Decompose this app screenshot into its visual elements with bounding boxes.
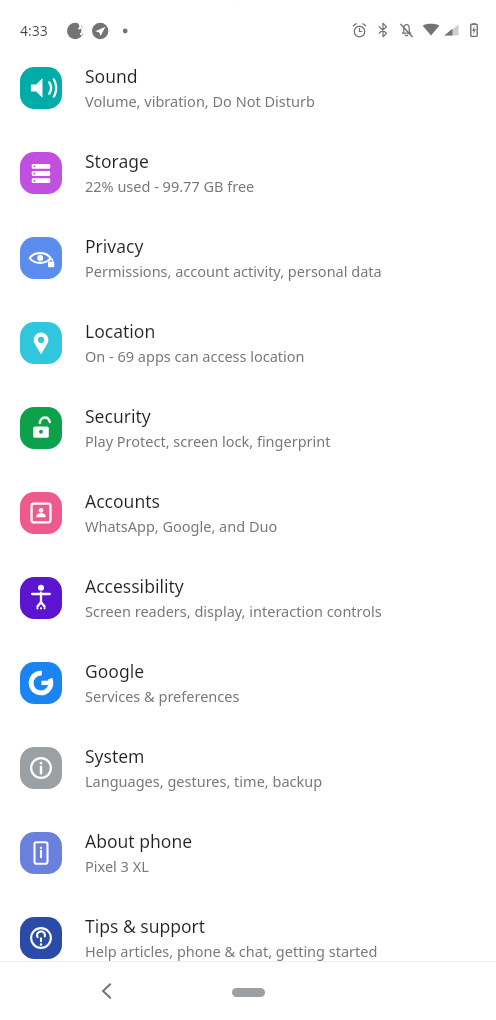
staticText: System: [85, 744, 145, 768]
staticText: Permissions, account activity, personal …: [85, 261, 382, 281]
staticText: Sound: [85, 64, 138, 88]
staticText: 4:33: [20, 21, 48, 40]
staticText: Languages, gestures, time, backup: [85, 771, 323, 791]
button[interactable]: Accessibility: [0, 555, 496, 640]
button[interactable]: System: [0, 725, 496, 810]
staticText: Help articles, phone & chat, getting sta…: [85, 941, 378, 961]
staticText: WhatsApp, Google, and Duo: [85, 516, 278, 536]
button[interactable]: Back: [85, 969, 129, 1013]
staticText: 22% used - 99.77 GB free: [85, 176, 255, 196]
button[interactable]: Home: [218, 979, 278, 1005]
staticText: Pixel 3 XL: [85, 856, 149, 876]
button[interactable]: Tips & support: [0, 895, 496, 980]
staticText: Security: [85, 404, 151, 428]
staticText: Privacy: [85, 234, 144, 258]
button[interactable]: Google: [0, 640, 496, 725]
button[interactable]: Location: [0, 300, 496, 385]
button[interactable]: Privacy: [0, 215, 496, 300]
staticText: Volume, vibration, Do Not Disturb: [85, 91, 315, 111]
staticText: On - 69 apps can access location: [85, 346, 305, 366]
staticText: Accounts: [85, 489, 160, 513]
staticText: Google: [85, 659, 145, 683]
button[interactable]: Security: [0, 385, 496, 470]
button[interactable]: About phone: [0, 810, 496, 895]
button[interactable]: Sound: [0, 45, 496, 130]
staticText: About phone: [85, 829, 193, 853]
staticText: Storage: [85, 149, 149, 173]
staticText: Location: [85, 319, 156, 343]
staticText: Accessibility: [85, 574, 184, 598]
staticText: Tips & support: [85, 914, 206, 938]
staticText: Services & preferences: [85, 686, 240, 706]
staticText: Play Protect, screen lock, fingerprint: [85, 431, 331, 451]
button[interactable]: Accounts: [0, 470, 496, 555]
button[interactable]: Storage: [0, 130, 496, 215]
staticText: Screen readers, display, interaction con…: [85, 601, 382, 621]
